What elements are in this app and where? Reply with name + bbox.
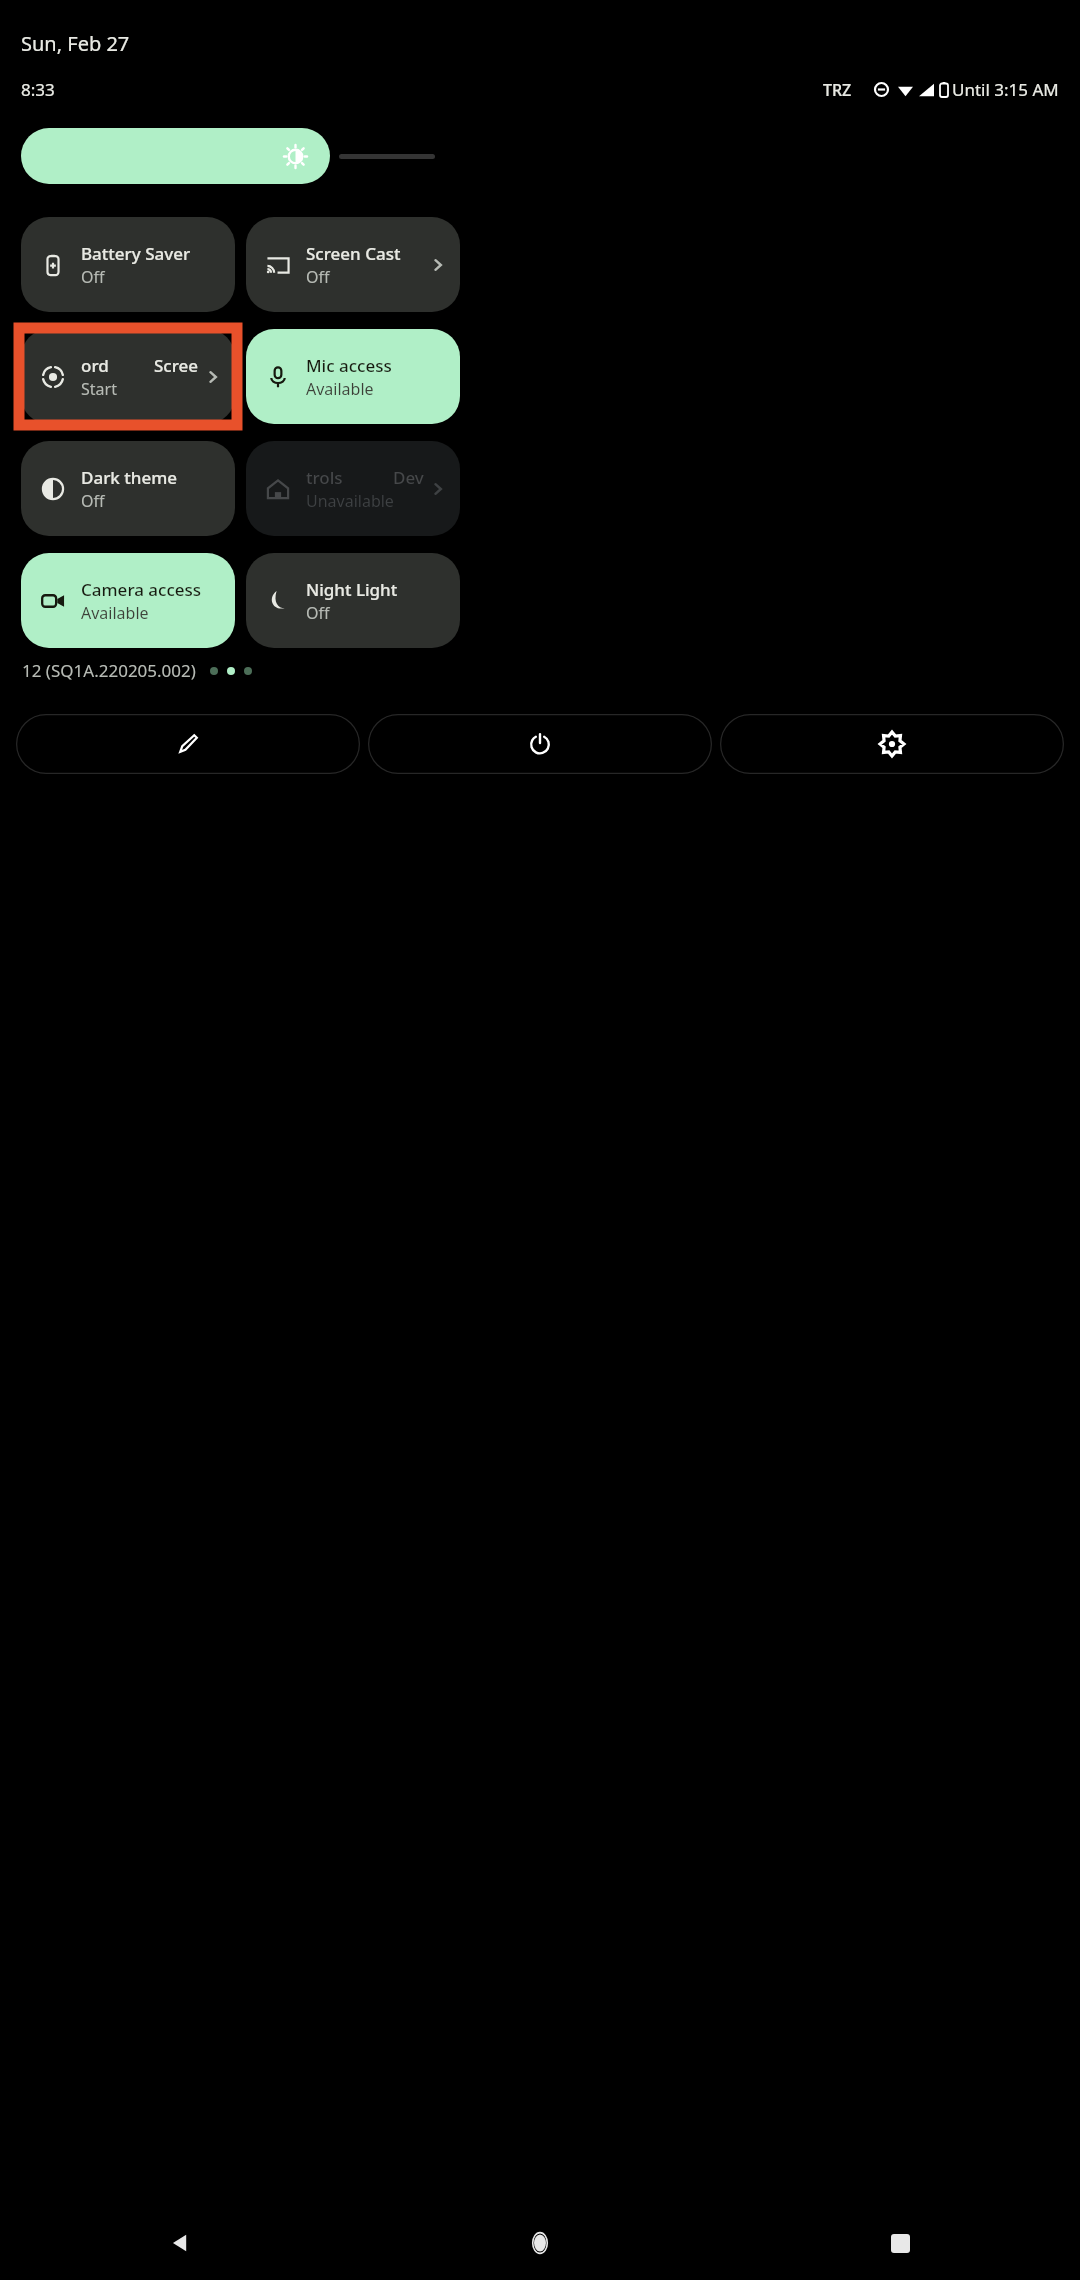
button[interactable]: Power	[368, 714, 712, 774]
button[interactable]: Settings	[720, 714, 1064, 774]
staticText: Dev	[393, 466, 424, 489]
staticText: Available	[81, 602, 149, 624]
staticText: Off	[81, 490, 105, 512]
staticText: Sun, Feb 27	[21, 30, 130, 57]
button[interactable]: Dark theme	[21, 441, 235, 536]
button[interactable]: Battery Saver	[21, 217, 235, 312]
button[interactable]: trols	[246, 441, 460, 536]
staticText: Start	[81, 378, 117, 400]
button[interactable]: Brightness	[21, 128, 330, 184]
button[interactable]: Camera access	[21, 553, 235, 648]
staticText: Off	[81, 266, 105, 288]
staticText: Off	[306, 266, 330, 288]
staticText: Screen Cast	[306, 242, 401, 265]
staticText: Available	[306, 378, 374, 400]
staticText: Mic access	[306, 354, 392, 377]
button[interactable]: Night Light	[246, 553, 460, 648]
staticText: Battery Saver	[81, 242, 191, 265]
button[interactable]: Back	[0, 2206, 360, 2280]
staticText: 8:33	[21, 78, 55, 101]
staticText: Until 3:15 AM	[952, 78, 1059, 101]
staticText: Night Light	[306, 578, 398, 601]
staticText: TRZ	[823, 79, 852, 101]
staticText: ord	[81, 354, 109, 377]
staticText: Scree	[154, 354, 199, 377]
button[interactable]: Home	[360, 2206, 720, 2280]
staticText: Off	[306, 602, 330, 624]
button[interactable]: Edit tiles	[16, 714, 360, 774]
button[interactable]: Recent apps	[720, 2206, 1080, 2280]
staticText: trols	[306, 466, 343, 489]
button[interactable]: ord	[21, 329, 235, 424]
button[interactable]: Screen Cast	[246, 217, 460, 312]
staticText: Unavailable	[306, 490, 394, 512]
staticText: 12 (SQ1A.220205.002)	[22, 659, 196, 682]
staticText: Dark theme	[81, 466, 178, 489]
staticText: Camera access	[81, 578, 202, 601]
button[interactable]: Mic access	[246, 329, 460, 424]
